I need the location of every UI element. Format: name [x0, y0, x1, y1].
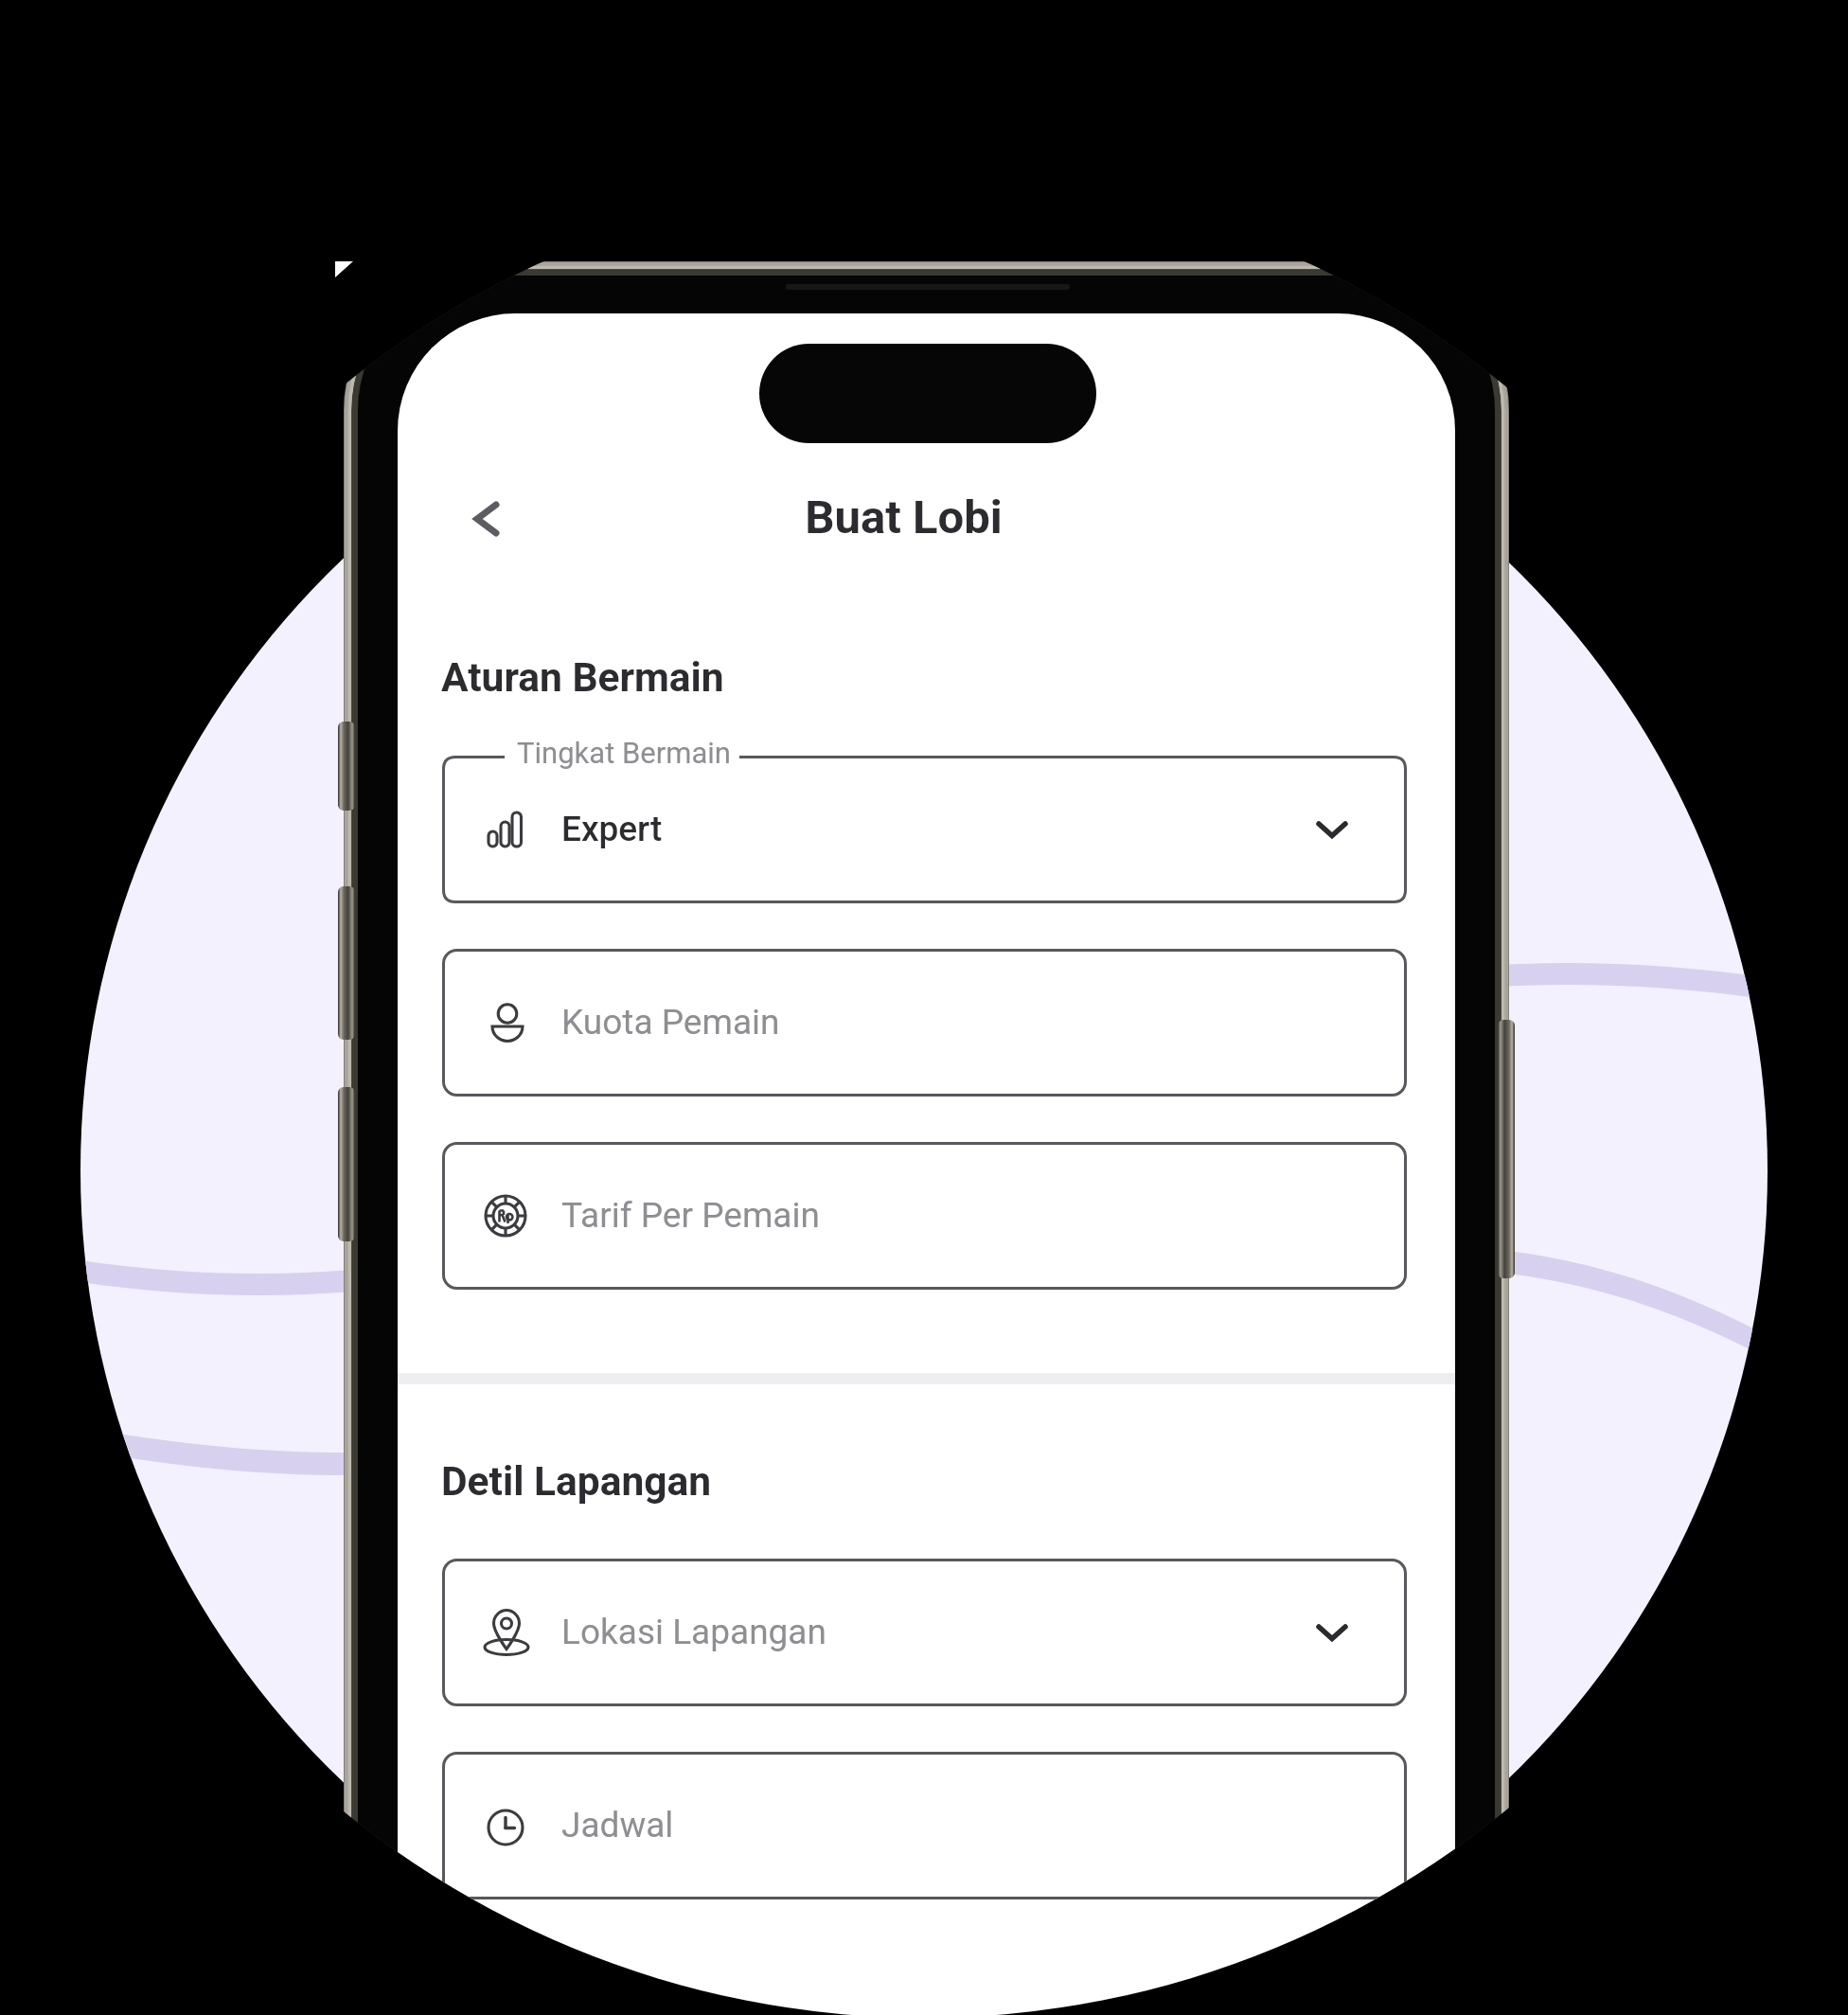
- button[interactable]: Tarif Per Pemain: [442, 1142, 1407, 1290]
- staticText: Lokasi Lapangan: [561, 1612, 826, 1652]
- staticText: Tingkat Bermain: [517, 736, 731, 770]
- button[interactable]: Tingkat Bermain: [442, 756, 1407, 903]
- staticText: Detil Lapangan: [441, 1458, 712, 1506]
- staticText: Aturan Bermain: [441, 654, 724, 702]
- staticText: Tarif Per Pemain: [561, 1195, 820, 1236]
- button[interactable]: Back: [439, 472, 534, 566]
- staticText: Jadwal: [561, 1805, 674, 1846]
- button[interactable]: Kuota Pemain: [442, 949, 1407, 1097]
- staticText: Buat Lobi: [398, 490, 1432, 544]
- staticText: Kuota Pemain: [561, 1002, 780, 1043]
- staticText: Expert: [561, 809, 663, 849]
- button[interactable]: Jadwal: [442, 1752, 1407, 1899]
- button[interactable]: Lokasi Lapangan: [442, 1559, 1407, 1706]
